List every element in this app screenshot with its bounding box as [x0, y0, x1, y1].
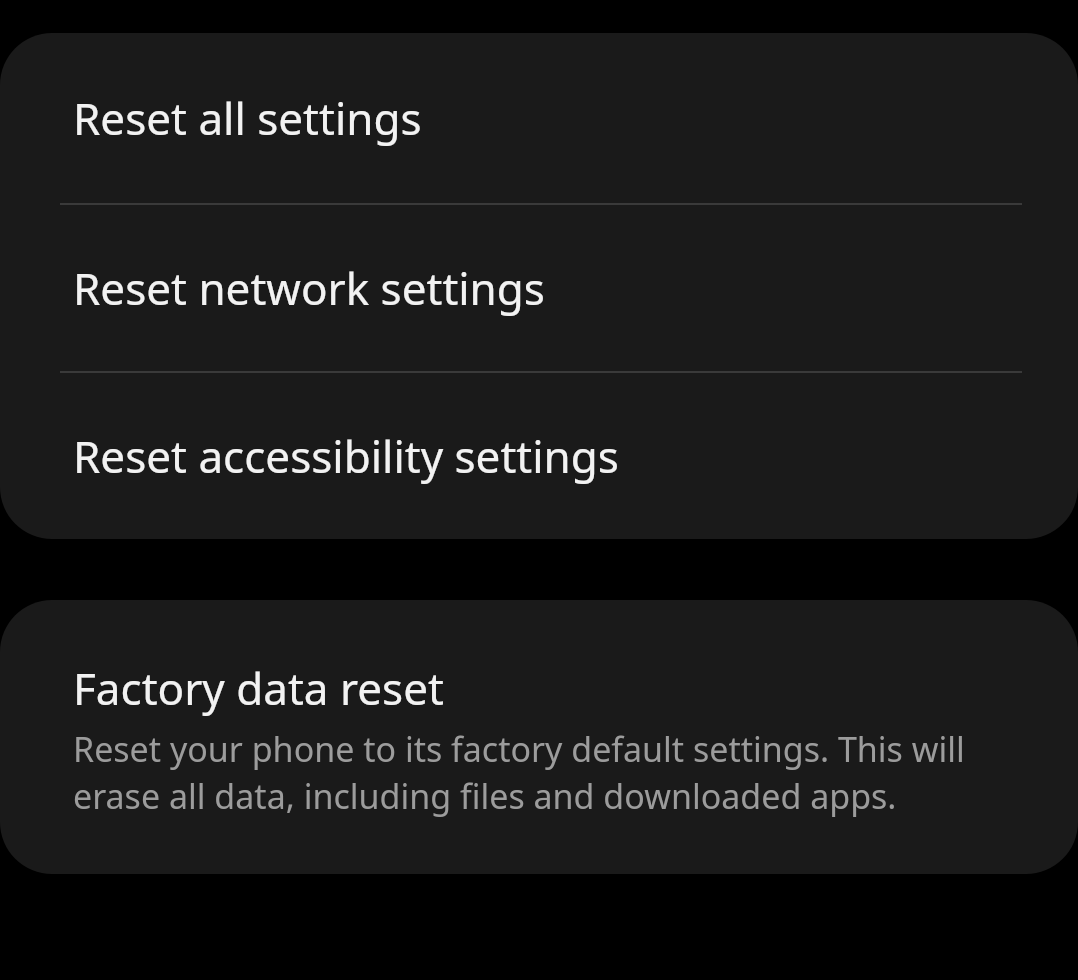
- button[interactable]: Factory data reset: [0, 600, 1078, 874]
- staticText: Reset all settings: [73, 88, 422, 148]
- button[interactable]: Reset accessibility settings: [0, 373, 1078, 539]
- staticText: Reset accessibility settings: [73, 426, 619, 486]
- button[interactable]: Reset network settings: [0, 205, 1078, 371]
- button[interactable]: Reset all settings: [0, 33, 1078, 203]
- staticText: Reset network settings: [73, 258, 545, 318]
- staticText: Factory data reset: [73, 658, 444, 718]
- staticText: Reset your phone to its factory default …: [73, 726, 993, 819]
